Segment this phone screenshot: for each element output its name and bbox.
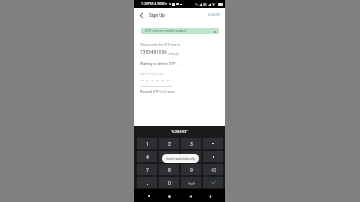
- staticText: 7:28PM 4.9KB/s: [141, 2, 168, 6]
- staticText: 7353481056: [140, 50, 167, 56]
- staticText: Please enter the OTP sent to: [140, 43, 181, 47]
- staticText: 4: [146, 154, 149, 160]
- button[interactable]: 4: [137, 151, 157, 162]
- staticText: 0: [168, 180, 171, 186]
- staticText: OTP sent on mobile number: [145, 29, 187, 33]
- staticText: Waiting to detect OTP ...: [140, 62, 180, 66]
- button[interactable]: 9: [181, 164, 201, 175]
- button[interactable]: Hide keyboard: [205, 191, 215, 201]
- button[interactable]: 1: [137, 138, 157, 149]
- button[interactable]: [203, 151, 223, 162]
- button[interactable]: "628693": [171, 129, 188, 134]
- staticText: 9: [190, 167, 193, 173]
- button[interactable]: Space: [181, 177, 201, 188]
- button[interactable]: 3: [181, 138, 201, 149]
- button[interactable]: Insert automatically: [162, 154, 199, 163]
- button[interactable]: Backspace: [203, 164, 223, 175]
- button[interactable]: OTP sent on mobile number: [141, 28, 219, 34]
- button[interactable]: Back: [137, 11, 146, 20]
- button[interactable]: 5: [159, 151, 179, 162]
- button[interactable]: Recent apps: [144, 191, 154, 201]
- other: Backspace: [211, 168, 216, 172]
- other: Done: [211, 180, 216, 185]
- staticText: 8: [168, 167, 171, 173]
- staticText: 1: [146, 141, 149, 147]
- staticText: 2: [168, 141, 171, 147]
- staticText: Resend OTP in 2 secs: [140, 90, 175, 94]
- staticText: change: [168, 52, 179, 56]
- button[interactable]: 0: [159, 177, 179, 188]
- staticText: Insert automatically: [166, 157, 196, 161]
- button[interactable]: 7: [137, 164, 157, 175]
- button[interactable]: Back: [185, 191, 195, 201]
- other: Space: [189, 182, 194, 184]
- staticText: 7: [146, 167, 149, 173]
- staticText: Sign Up: [149, 13, 165, 18]
- button[interactable]: 2: [159, 138, 179, 149]
- button[interactable]: 8: [159, 164, 179, 175]
- button[interactable]: change: [168, 52, 179, 56]
- staticText: 3: [190, 141, 193, 147]
- staticText: LOGIN: [208, 12, 220, 17]
- button[interactable]: [203, 138, 223, 149]
- button[interactable]: Home: [164, 191, 174, 201]
- button[interactable]: LOGIN: [205, 9, 223, 20]
- button[interactable]: Done: [203, 177, 223, 188]
- button[interactable]: [137, 177, 157, 188]
- staticText: 5: [168, 154, 171, 160]
- staticText: 6: [190, 154, 193, 160]
- button[interactable]: 6: [181, 151, 201, 162]
- staticText: Enter 6-digit code: [140, 72, 164, 76]
- staticText: 4G: [203, 3, 207, 6]
